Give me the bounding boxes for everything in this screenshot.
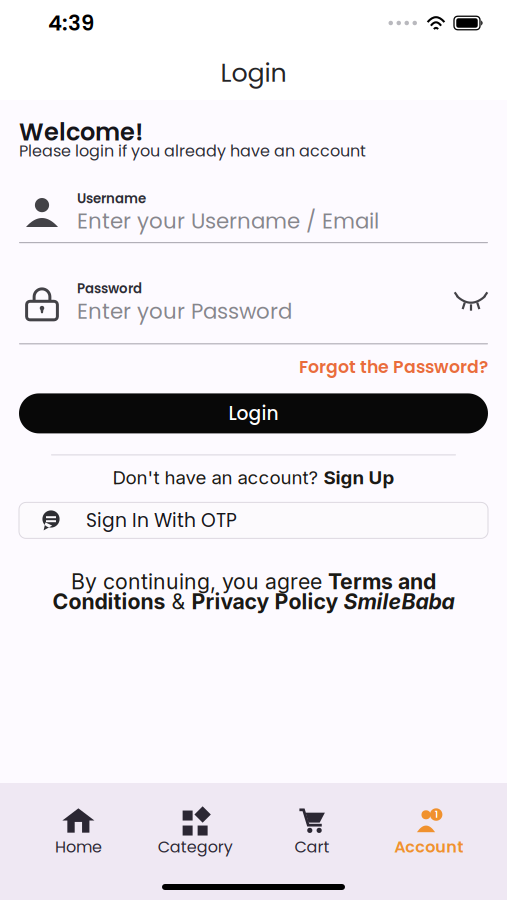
staticText: Login	[220, 55, 286, 91]
staticText: Enter your Username / Email	[77, 206, 379, 236]
staticText: Conditions & Privacy Policy SmileBaba	[52, 589, 454, 614]
button[interactable]: Forgot the Password?	[299, 358, 488, 375]
staticText: Username	[77, 189, 146, 208]
button[interactable]: Don't have an account? Sign Up	[112, 468, 394, 486]
staticText: Account	[394, 836, 463, 858]
staticText: Sign In With OTP	[86, 507, 237, 533]
staticText: By continuing, you agree Terms and	[71, 569, 436, 594]
staticText: 4:39	[48, 8, 94, 38]
button[interactable]: Sign In With OTP	[19, 502, 488, 538]
staticText: Don't have an account? Sign Up	[112, 466, 394, 488]
staticText: Forgot the Password?	[299, 355, 488, 379]
staticText: Cart	[294, 836, 329, 858]
staticText: Login	[228, 400, 278, 426]
staticText: Category	[158, 836, 233, 858]
staticText: 1	[435, 808, 438, 821]
staticText: Please login if you already have an acco…	[19, 140, 366, 162]
button[interactable]: Show password	[454, 293, 488, 312]
button[interactable]: Login	[19, 393, 488, 433]
button[interactable]: Home	[20, 808, 137, 854]
staticText: Home	[55, 836, 102, 858]
button[interactable]: Category	[137, 808, 254, 854]
staticText: Welcome!	[19, 115, 143, 149]
button[interactable]: Cart	[253, 808, 370, 854]
button[interactable]: 1	[370, 808, 487, 854]
staticText: Enter your Password	[77, 296, 292, 326]
staticText: Password	[77, 279, 142, 298]
